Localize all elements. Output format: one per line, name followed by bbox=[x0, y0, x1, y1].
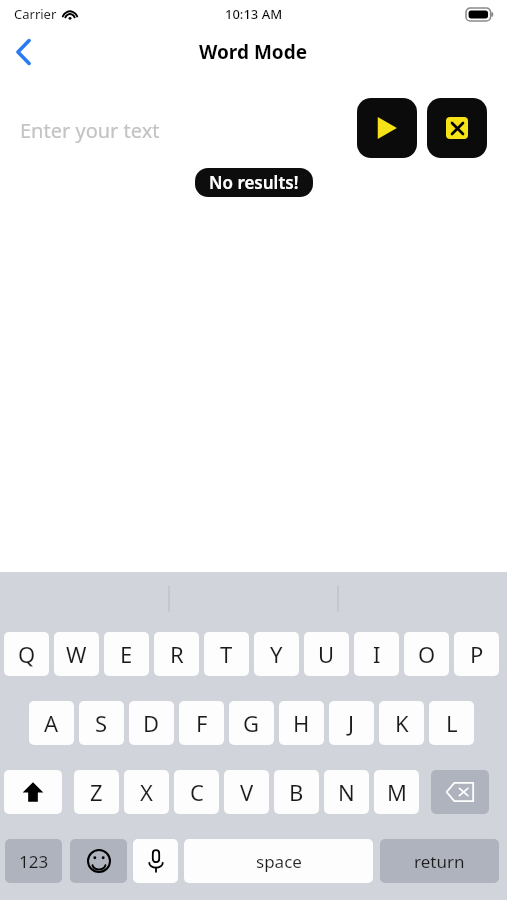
staticText: L bbox=[446, 708, 458, 738]
button[interactable]: I bbox=[354, 632, 399, 676]
staticText: V bbox=[240, 777, 254, 807]
button[interactable]: Dictate bbox=[133, 839, 178, 883]
button[interactable]: A bbox=[29, 701, 74, 745]
button[interactable]: S bbox=[79, 701, 124, 745]
button[interactable]: Y bbox=[254, 632, 299, 676]
staticText: F bbox=[196, 708, 208, 738]
staticText: G bbox=[243, 708, 260, 738]
staticText: D bbox=[143, 708, 160, 738]
button[interactable]: L bbox=[429, 701, 474, 745]
button[interactable]: Shift bbox=[4, 770, 62, 814]
button[interactable]: C bbox=[174, 770, 219, 814]
button[interactable]: T bbox=[204, 632, 249, 676]
button[interactable]: B bbox=[274, 770, 319, 814]
staticText: U bbox=[318, 639, 335, 669]
staticText: I bbox=[373, 639, 381, 669]
staticText: J bbox=[348, 708, 355, 738]
button[interactable]: H bbox=[279, 701, 324, 745]
button[interactable]: Backspace bbox=[431, 770, 489, 814]
button[interactable]: Play bbox=[357, 98, 417, 158]
staticText: Carrier bbox=[14, 5, 57, 23]
button[interactable]: E bbox=[104, 632, 149, 676]
staticText: Z bbox=[90, 777, 103, 807]
staticText: Enter your text bbox=[20, 117, 160, 144]
button[interactable]: U bbox=[304, 632, 349, 676]
staticText: W bbox=[66, 639, 87, 669]
staticText: H bbox=[293, 708, 310, 738]
button[interactable]: J bbox=[329, 701, 374, 745]
button[interactable]: return bbox=[380, 839, 499, 883]
staticText: T bbox=[220, 639, 233, 669]
staticText: M bbox=[387, 777, 407, 807]
button[interactable]: R bbox=[154, 632, 199, 676]
staticText: N bbox=[338, 777, 355, 807]
staticText: No results! bbox=[209, 171, 299, 194]
staticText: R bbox=[170, 639, 184, 669]
staticText: 123 bbox=[19, 850, 49, 873]
button[interactable]: N bbox=[324, 770, 369, 814]
button[interactable]: V bbox=[224, 770, 269, 814]
staticText: Word Mode bbox=[199, 39, 308, 65]
button[interactable]: K bbox=[379, 701, 424, 745]
button[interactable]: Q bbox=[4, 632, 49, 676]
button[interactable]: space bbox=[184, 839, 373, 883]
button[interactable]: W bbox=[54, 632, 99, 676]
staticText: K bbox=[395, 708, 409, 738]
button[interactable]: F bbox=[179, 701, 224, 745]
button[interactable]: X bbox=[124, 770, 169, 814]
staticText: A bbox=[44, 708, 59, 738]
staticText: return bbox=[414, 850, 465, 873]
staticText: B bbox=[289, 777, 304, 807]
staticText: X bbox=[140, 777, 153, 807]
button[interactable]: Clear bbox=[427, 98, 487, 158]
staticText: S bbox=[95, 708, 108, 738]
button[interactable]: G bbox=[229, 701, 274, 745]
staticText: space bbox=[256, 850, 302, 873]
button[interactable]: Emoji bbox=[70, 839, 127, 883]
button[interactable]: D bbox=[129, 701, 174, 745]
staticText: C bbox=[190, 777, 204, 807]
staticText: Q bbox=[18, 639, 36, 669]
staticText: Y bbox=[270, 639, 283, 669]
button[interactable]: M bbox=[374, 770, 419, 814]
button[interactable]: Z bbox=[74, 770, 119, 814]
button[interactable]: Back bbox=[0, 28, 48, 76]
button[interactable]: P bbox=[454, 632, 499, 676]
staticText: P bbox=[470, 639, 484, 669]
button[interactable]: 123 bbox=[5, 839, 62, 883]
staticText: O bbox=[418, 639, 436, 669]
staticText: 10:13 AM bbox=[225, 5, 283, 23]
staticText: E bbox=[120, 639, 133, 669]
button[interactable]: O bbox=[404, 632, 449, 676]
